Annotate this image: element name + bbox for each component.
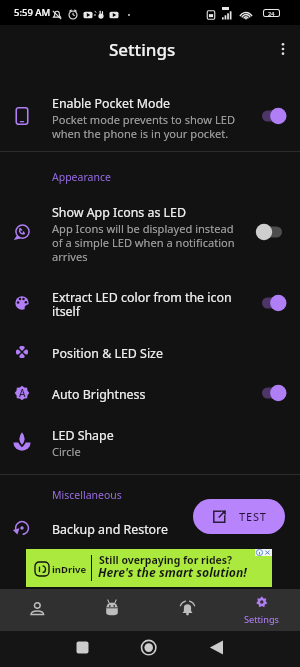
staticText: Show App Icons as LED bbox=[52, 204, 187, 221]
staticText: Settings bbox=[109, 38, 176, 61]
button[interactable]: Profile bbox=[0, 589, 75, 631]
staticText: Settings bbox=[244, 613, 279, 626]
staticText: Miscellaneous bbox=[52, 488, 122, 502]
button[interactable]: A bbox=[0, 372, 300, 413]
button[interactable]: Advertisement bbox=[26, 549, 272, 587]
button[interactable]: Settings bbox=[225, 589, 300, 631]
staticText: 24 bbox=[268, 10, 275, 16]
staticText: 5:59 AM bbox=[14, 6, 51, 19]
button[interactable]: Backup and Restore bbox=[0, 507, 300, 548]
staticText: Extract LED color from the icon itself bbox=[52, 289, 232, 320]
staticText: Pocket mode prevents to show LED when th… bbox=[52, 112, 235, 141]
staticText: Here's the smart solution! bbox=[98, 564, 247, 581]
staticText: Enable Pocket Mode bbox=[52, 95, 171, 112]
staticText: Position & LED Size bbox=[52, 345, 163, 362]
button[interactable]: On bbox=[262, 384, 287, 402]
staticText: Appearance bbox=[52, 170, 111, 184]
staticText: TEST bbox=[239, 509, 267, 524]
button[interactable]: More options bbox=[266, 25, 300, 73]
button[interactable]: On bbox=[262, 107, 287, 125]
button[interactable]: Apps bbox=[75, 589, 150, 631]
staticText: Circle bbox=[52, 444, 81, 459]
button[interactable]: Enable Pocket Mode bbox=[0, 80, 300, 151]
button[interactable]: Position & LED Size bbox=[0, 331, 300, 372]
button[interactable]: Off bbox=[262, 223, 287, 241]
button[interactable]: Show App Icons as LED bbox=[0, 189, 300, 274]
button[interactable]: Notifications bbox=[150, 589, 225, 631]
button[interactable]: TEST bbox=[193, 499, 285, 534]
button[interactable]: On bbox=[262, 294, 287, 312]
staticText: Auto Brightness bbox=[52, 386, 146, 403]
button[interactable]: LED Shape bbox=[0, 413, 300, 474]
staticText: App Icons will be displayed instead of a… bbox=[52, 221, 235, 264]
button[interactable]: Extract LED color from the icon itself bbox=[0, 274, 300, 331]
staticText: LED Shape bbox=[52, 427, 114, 444]
staticText: Backup and Restore bbox=[52, 521, 168, 538]
staticText: A bbox=[19, 386, 26, 400]
staticText: Still overpaying for rides? bbox=[99, 553, 233, 567]
staticText: inDrive bbox=[52, 563, 87, 576]
